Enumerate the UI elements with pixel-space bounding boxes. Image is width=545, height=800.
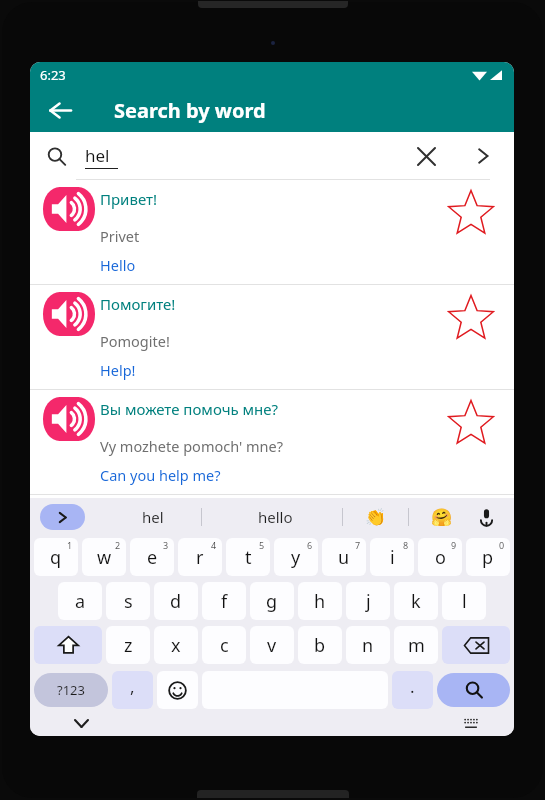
staticText: Help! — [100, 360, 136, 380]
staticText: z — [124, 633, 133, 658]
staticText: v — [267, 633, 277, 658]
staticText: h — [314, 589, 326, 614]
button[interactable]: t — [226, 538, 270, 576]
button[interactable]: Emoji — [157, 671, 198, 709]
button[interactable]: Play pronunciation — [41, 185, 97, 233]
button[interactable]: Search — [40, 140, 72, 172]
staticText: o — [435, 545, 446, 570]
button[interactable]: hel — [114, 500, 192, 534]
button[interactable]: e — [130, 538, 174, 576]
button[interactable]: z — [106, 626, 150, 664]
button[interactable]: 👏 — [358, 499, 394, 535]
button[interactable]: i — [370, 538, 414, 576]
staticText: a — [75, 589, 86, 614]
button[interactable]: ?123 — [34, 673, 108, 707]
button[interactable]: Favorite — [441, 393, 501, 453]
staticText: Search by word — [114, 97, 266, 124]
button[interactable]: x — [154, 626, 198, 664]
button[interactable]: q — [34, 538, 78, 576]
staticText: Привет! — [100, 189, 158, 209]
staticText: j — [366, 589, 371, 614]
button[interactable]: 🤗 — [424, 499, 460, 535]
button[interactable]: b — [298, 626, 342, 664]
button[interactable]: y — [274, 538, 318, 576]
staticText: Помогите! — [100, 294, 176, 314]
staticText: p — [482, 545, 494, 570]
staticText: n — [362, 633, 374, 658]
staticText: . — [410, 675, 415, 698]
button[interactable]: Play pronunciation — [41, 290, 97, 338]
button[interactable]: Clear — [409, 139, 443, 173]
staticText: b — [314, 633, 326, 658]
button[interactable]: Voice input — [469, 500, 503, 534]
button[interactable]: Favorite — [441, 183, 501, 243]
button[interactable]: Play pronunciation — [30, 390, 514, 494]
staticText: 7 — [355, 539, 361, 551]
staticText: r — [196, 545, 204, 570]
button[interactable]: h — [298, 582, 342, 620]
button[interactable]: . — [392, 671, 433, 709]
button[interactable]: o — [418, 538, 462, 576]
staticText: 6:23 — [40, 66, 66, 84]
button[interactable]: Back — [40, 90, 80, 130]
button[interactable]: a — [58, 582, 102, 620]
button[interactable]: w — [82, 538, 126, 576]
button[interactable]: , — [112, 671, 153, 709]
staticText: m — [408, 633, 425, 658]
staticText: c — [220, 633, 229, 658]
button[interactable]: j — [346, 582, 390, 620]
button[interactable]: hello — [230, 500, 320, 534]
staticText: 9 — [451, 539, 457, 551]
staticText: y — [291, 545, 301, 570]
staticText: i — [390, 545, 395, 570]
staticText: 👏 — [365, 507, 387, 527]
button[interactable]: Shift — [34, 626, 102, 664]
staticText: x — [171, 633, 181, 658]
staticText: k — [411, 589, 421, 614]
button[interactable]: Next — [466, 139, 500, 173]
staticText: d — [170, 589, 182, 614]
staticText: 1 — [67, 539, 73, 551]
staticText: u — [338, 545, 350, 570]
button[interactable]: g — [250, 582, 294, 620]
button[interactable]: n — [346, 626, 390, 664]
staticText: e — [147, 545, 158, 570]
button[interactable]: p — [466, 538, 510, 576]
staticText: Vy mozhete pomoch' mne? — [100, 436, 284, 456]
staticText: 0 — [499, 539, 505, 551]
staticText: g — [266, 589, 278, 614]
button[interactable]: More suggestions — [40, 504, 85, 530]
staticText: Вы можете помочь мне? — [100, 399, 279, 419]
button[interactable]: Favorite — [441, 288, 501, 348]
staticText: hel — [142, 507, 164, 527]
staticText: Pomogite! — [100, 331, 170, 351]
staticText: 4 — [211, 539, 217, 551]
button[interactable]: f — [202, 582, 246, 620]
staticText: Hello — [100, 255, 136, 275]
staticText: 3 — [163, 539, 169, 551]
button[interactable]: Backspace — [442, 626, 510, 664]
button[interactable]: Play pronunciation — [30, 285, 514, 389]
button[interactable]: d — [154, 582, 198, 620]
staticText: 6 — [307, 539, 313, 551]
staticText: 2 — [115, 539, 121, 551]
button[interactable]: u — [322, 538, 366, 576]
button[interactable]: v — [250, 626, 294, 664]
button[interactable]: c — [202, 626, 246, 664]
button[interactable]: Search — [437, 673, 510, 707]
button[interactable]: m — [394, 626, 438, 664]
button[interactable]: Play pronunciation — [30, 180, 514, 284]
button[interactable]: l — [442, 582, 486, 620]
button[interactable]: Switch keyboard — [458, 710, 484, 736]
staticText: , — [130, 675, 135, 698]
staticText: hello — [258, 507, 293, 527]
staticText: q — [50, 545, 62, 570]
staticText: hel — [85, 144, 110, 167]
button[interactable]: r — [178, 538, 222, 576]
staticText: 🤗 — [431, 507, 453, 527]
button[interactable]: Hide keyboard — [68, 710, 94, 736]
button[interactable]: s — [106, 582, 150, 620]
button[interactable]: k — [394, 582, 438, 620]
button[interactable]: Play pronunciation — [41, 395, 97, 443]
